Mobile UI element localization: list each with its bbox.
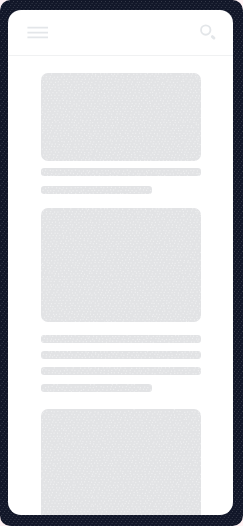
button[interactable]: Open navigation menu [23, 22, 52, 43]
button[interactable]: Search [196, 21, 220, 45]
